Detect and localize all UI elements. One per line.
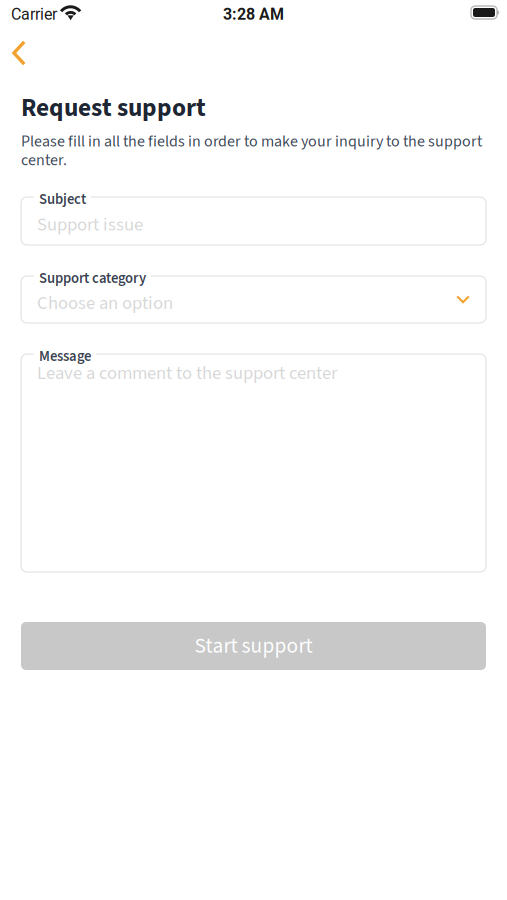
staticText: Choose an option [37, 290, 173, 317]
staticText: Start support [194, 631, 312, 661]
staticText: 3:28 AM [223, 5, 284, 24]
staticText: Message [39, 346, 91, 367]
button[interactable]: Start support [21, 622, 486, 670]
staticText: Please fill in all the fields in order t… [21, 130, 482, 172]
button[interactable]: Choose an option [21, 276, 486, 323]
button[interactable]: Back [0, 34, 41, 72]
staticText: Request support [21, 90, 206, 126]
staticText: Support issue [37, 211, 143, 238]
staticText: Subject [39, 189, 86, 210]
staticText: Support category [39, 268, 146, 289]
staticText: Leave a comment to the support center [37, 360, 337, 387]
staticText: Carrier [11, 5, 57, 24]
